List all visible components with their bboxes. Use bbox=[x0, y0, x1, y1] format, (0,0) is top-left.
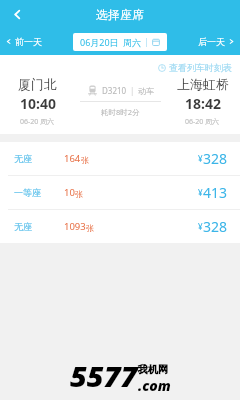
staticText: 前一天 bbox=[15, 36, 42, 47]
button[interactable]: 后一天 bbox=[194, 32, 240, 51]
staticText: ¥ bbox=[198, 153, 203, 164]
staticText: 10 bbox=[64, 186, 75, 199]
staticText: 厦门北 bbox=[18, 76, 57, 92]
staticText: 164 bbox=[64, 152, 81, 165]
staticText: 上海虹桥 bbox=[177, 76, 229, 92]
button[interactable]: 前一天 bbox=[0, 32, 46, 51]
button[interactable]: 无座 bbox=[0, 210, 240, 243]
button[interactable]: 查看列车时刻表 bbox=[156, 60, 234, 75]
staticText: 328 bbox=[203, 217, 228, 236]
staticText: 413 bbox=[203, 183, 228, 202]
staticText: 张 bbox=[81, 155, 89, 165]
staticText: 5577 bbox=[70, 356, 138, 395]
staticText: 动车 bbox=[138, 86, 154, 96]
staticText: 周六 bbox=[123, 37, 141, 48]
staticText: .com bbox=[138, 376, 171, 395]
staticText: 1093 bbox=[64, 220, 86, 233]
staticText: D3210 bbox=[102, 85, 127, 96]
button[interactable]: 无座 bbox=[0, 142, 240, 175]
button[interactable]: 06月20日 bbox=[73, 33, 167, 51]
staticText: 06-20 周六 bbox=[20, 117, 55, 127]
button[interactable]: 一等座 bbox=[0, 176, 240, 209]
staticText: 无座 bbox=[14, 153, 32, 164]
staticText: 张 bbox=[75, 189, 83, 199]
button[interactable]: Back bbox=[0, 0, 34, 28]
staticText: ¥ bbox=[198, 221, 203, 232]
staticText: 06月20日 bbox=[80, 36, 119, 48]
staticText: ¥ bbox=[198, 187, 203, 198]
staticText: 无座 bbox=[14, 221, 32, 232]
staticText: 张 bbox=[86, 223, 94, 233]
staticText: 我机网 bbox=[138, 363, 168, 376]
staticText: 后一天 bbox=[198, 36, 225, 47]
staticText: 一等座 bbox=[14, 187, 41, 198]
staticText: 328 bbox=[203, 149, 228, 168]
staticText: 06-20 周六 bbox=[185, 117, 220, 127]
staticText: 查看列车时刻表 bbox=[169, 62, 232, 73]
staticText: 耗时8时2分 bbox=[101, 107, 140, 117]
staticText: | bbox=[130, 85, 135, 96]
staticText: 选择座席 bbox=[96, 7, 144, 22]
staticText: 10:40 bbox=[20, 94, 56, 113]
staticText: 18:42 bbox=[185, 94, 221, 113]
